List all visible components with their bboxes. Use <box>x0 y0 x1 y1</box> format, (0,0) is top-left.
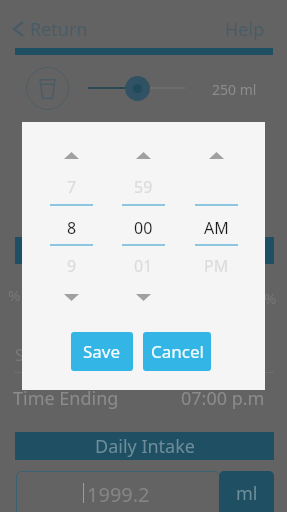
staticText: 07:00 p.m <box>181 386 265 411</box>
staticText: 1999.2 <box>87 481 150 508</box>
staticText: Cancel <box>151 340 204 363</box>
staticText: Time Ending <box>13 386 119 411</box>
staticText: Return <box>30 17 88 41</box>
button[interactable]: Decrement <box>41 288 102 306</box>
staticText: PM <box>204 255 229 277</box>
staticText: 250 ml <box>212 80 257 99</box>
staticText: 8 <box>67 217 77 239</box>
staticText: S <box>15 344 24 366</box>
button[interactable]: Increment <box>41 146 102 164</box>
staticText: : <box>106 340 110 359</box>
staticText: % <box>264 288 277 308</box>
button[interactable]: Return <box>13 17 88 41</box>
button[interactable]: Save <box>71 332 133 371</box>
staticText: Daily Intake <box>95 434 195 459</box>
staticText: AM <box>204 217 229 239</box>
staticText: 59 <box>134 176 153 198</box>
button[interactable]: Cup size <box>26 67 69 110</box>
staticText: Help <box>225 17 265 41</box>
staticText: % <box>8 285 21 305</box>
staticText: ml <box>236 481 258 506</box>
button[interactable]: Increment <box>186 146 247 164</box>
button[interactable]: Amount slider <box>125 76 150 101</box>
button[interactable]: Increment <box>113 146 174 164</box>
button[interactable]: Help <box>219 17 271 41</box>
button[interactable]: Decrement <box>113 288 174 306</box>
button[interactable]: 1999.2 <box>16 471 220 512</box>
staticText: Save <box>83 340 121 363</box>
staticText: 00 <box>134 217 153 239</box>
staticText: 9 <box>67 255 77 277</box>
button[interactable]: ml <box>219 471 274 512</box>
button[interactable]: Daily Intake <box>15 432 274 460</box>
staticText: 7 <box>67 176 77 198</box>
button[interactable]: Cancel <box>143 332 211 371</box>
staticText: 01 <box>134 255 153 277</box>
